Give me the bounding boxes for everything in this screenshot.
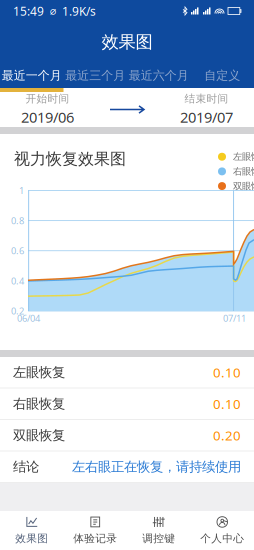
button[interactable]: 双眼恢复 [0, 420, 254, 450]
staticText: 1.9K/s [62, 3, 96, 19]
staticText: 15:49 [13, 3, 44, 19]
staticText: 左眼恢复 [13, 364, 65, 380]
staticText: 效果图 [15, 532, 48, 545]
button[interactable]: 结论 [0, 451, 254, 482]
staticText: 效果图 [101, 31, 152, 53]
staticText: 1 [19, 184, 24, 197]
button[interactable]: 调控键 [127, 511, 190, 550]
button[interactable]: 效果图 [0, 511, 63, 550]
staticText: 视力恢复效果图 [14, 149, 126, 169]
staticText: 自定义 [204, 68, 240, 83]
staticText: 个人中心 [200, 532, 244, 545]
staticText: 最近六个月 [129, 68, 189, 83]
staticText: 结束时间 [184, 92, 228, 105]
button[interactable]: 体验记录 [63, 511, 127, 550]
staticText: 0.10 [213, 395, 241, 413]
button[interactable]: 自定义 [190, 63, 254, 88]
staticText: 最近一个月 [2, 68, 62, 83]
staticText: 0.2 [11, 305, 24, 317]
staticText: 左右眼正在恢复，请持续使用 [72, 459, 241, 475]
staticText: 调控键 [142, 532, 175, 545]
staticText: 左眼恢 [233, 151, 254, 162]
button[interactable]: 左眼恢复 [0, 357, 254, 387]
staticText: 0.20 [213, 426, 241, 444]
button[interactable]: 个人中心 [190, 511, 254, 550]
staticText: 06/04 [17, 312, 40, 324]
staticText: 最近三个月 [65, 68, 125, 83]
staticText: 2019/07 [180, 107, 233, 127]
button[interactable]: 最近一个月 [0, 63, 63, 88]
staticText: 0.6 [11, 245, 24, 257]
staticText: 双眼恢 [233, 180, 254, 192]
staticText: 开始时间 [25, 92, 69, 105]
button[interactable]: 最近三个月 [63, 63, 127, 88]
staticText: 0.4 [11, 275, 24, 287]
button[interactable]: 开始时间 [0, 92, 95, 127]
staticText: ⌀ [44, 5, 62, 17]
staticText: 07/11 [223, 312, 246, 324]
staticText: 右眼恢 [233, 166, 254, 177]
staticText: 0.10 [213, 363, 241, 381]
button[interactable]: 右眼恢复 [0, 388, 254, 419]
staticText: 右眼恢复 [13, 396, 65, 412]
button[interactable]: 最近六个月 [127, 63, 190, 88]
staticText: 体验记录 [73, 532, 117, 545]
staticText: 双眼恢复 [13, 427, 65, 443]
button[interactable]: 结束时间 [159, 92, 254, 127]
staticText: 0.8 [11, 214, 24, 227]
staticText: 2019/06 [21, 107, 74, 127]
staticText: 结论 [13, 459, 39, 475]
